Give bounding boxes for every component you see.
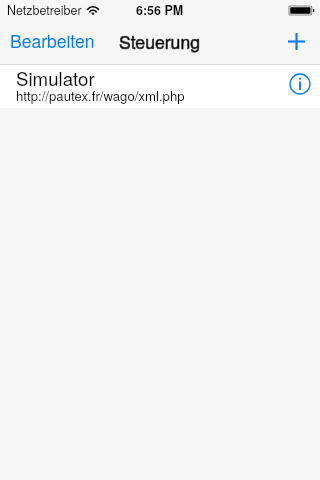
staticText: 6:56 PM [136,1,184,19]
staticText: Steuerung [119,29,201,54]
button[interactable]: Bearbeiten [0,20,105,64]
staticText: Steuerung [119,29,201,54]
button[interactable]: Details [278,64,320,108]
button[interactable]: Simulator [0,64,320,108]
button[interactable]: Add [274,20,320,64]
staticText: Netzbetreiber [7,1,82,19]
staticText: Bearbeiten [10,28,95,53]
staticText: http://pautex.fr/wago/xml.php [16,86,185,105]
staticText: Simulator [16,65,95,92]
